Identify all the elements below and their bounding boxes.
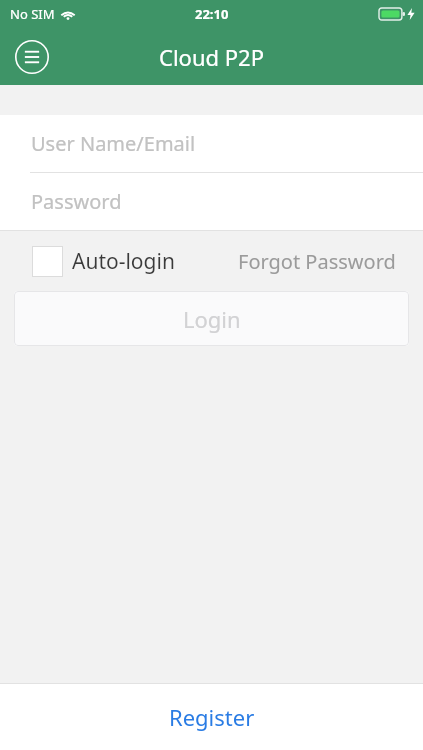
staticText: Password	[31, 188, 122, 215]
staticText: Register	[169, 702, 255, 732]
button[interactable]: Menu	[12, 37, 52, 77]
button[interactable]: Auto-login	[32, 246, 181, 277]
button[interactable]: Forgot Password	[236, 240, 398, 283]
button[interactable]: User Name/Email	[0, 115, 423, 172]
staticText: User Name/Email	[31, 130, 196, 157]
button[interactable]: Password	[0, 173, 423, 230]
staticText: Forgot Password	[238, 248, 396, 275]
staticText: Auto-login	[72, 247, 175, 276]
staticText: No SIM	[10, 5, 55, 23]
staticText: 22:10	[195, 5, 229, 23]
button[interactable]: Register	[0, 684, 423, 750]
staticText: Login	[183, 304, 241, 334]
button[interactable]: Login	[14, 291, 409, 346]
staticText: Cloud P2P	[159, 42, 264, 72]
